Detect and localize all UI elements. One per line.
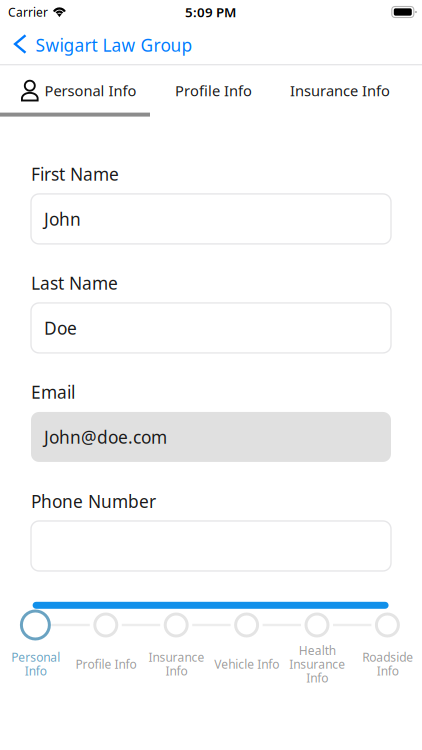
staticText: Carrier — [8, 4, 48, 20]
staticText: Email — [31, 381, 75, 404]
button[interactable]: Insurance Info — [141, 600, 211, 700]
staticText: Doe — [44, 316, 77, 339]
button[interactable]: Vehicle Info — [211, 600, 282, 700]
staticText: Profile Info — [75, 656, 136, 672]
staticText: Vehicle Info — [214, 656, 279, 672]
button[interactable]: Personal Info — [0, 69, 157, 113]
staticText: Last Name — [31, 272, 118, 295]
staticText: Personal Info — [11, 649, 60, 679]
button[interactable]: Health Insurance Info — [282, 600, 352, 700]
button[interactable]: Swigart Law Group — [0, 27, 202, 62]
staticText: Insurance Info — [148, 649, 204, 679]
button[interactable]: Profile Info — [155, 69, 272, 113]
staticText: First Name — [31, 163, 119, 186]
staticText: Insurance Info — [290, 81, 390, 100]
staticText: John@doe.com — [44, 425, 167, 448]
staticText: John — [44, 207, 81, 230]
button[interactable]: Roadside Info — [352, 600, 422, 700]
button[interactable]: Insurance Info — [270, 69, 410, 113]
staticText: Phone Number — [31, 490, 156, 513]
staticText: Health Insurance Info — [289, 642, 345, 686]
staticText: Personal Info — [44, 81, 136, 100]
staticText: 5:09 PM — [185, 3, 236, 21]
staticText: Roadside Info — [362, 649, 413, 679]
staticText: Swigart Law Group — [35, 33, 192, 56]
staticText: Profile Info — [175, 81, 252, 100]
button[interactable]: Personal Info — [0, 600, 71, 700]
button[interactable]: Profile Info — [71, 600, 141, 700]
